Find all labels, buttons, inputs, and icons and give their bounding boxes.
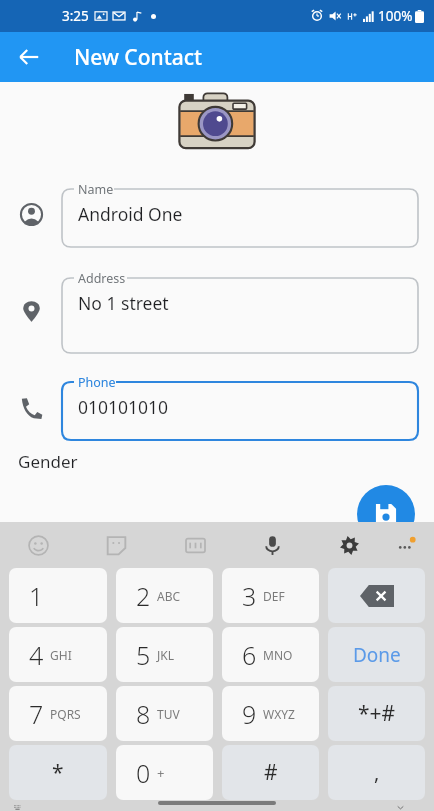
staticText: 010101010 bbox=[78, 395, 169, 419]
button[interactable]: Back bbox=[8, 36, 50, 78]
button[interactable]: # bbox=[222, 745, 319, 800]
staticText: 7 bbox=[29, 697, 44, 731]
button[interactable]: 9 bbox=[222, 686, 319, 741]
button[interactable]: Done bbox=[328, 627, 425, 682]
staticText: , bbox=[374, 759, 380, 786]
button[interactable]: Settings bbox=[329, 525, 369, 565]
button[interactable]: 8 bbox=[116, 686, 213, 741]
button[interactable]: * bbox=[9, 745, 107, 800]
staticText: + bbox=[157, 764, 165, 782]
staticText: Done bbox=[353, 642, 401, 668]
staticText: 1 bbox=[29, 579, 44, 613]
staticText: 5 bbox=[136, 638, 151, 672]
staticText: TUV bbox=[157, 706, 180, 722]
staticText: ABC bbox=[157, 588, 181, 604]
staticText: New Contact bbox=[74, 43, 203, 72]
button[interactable]: Stickers bbox=[96, 525, 136, 565]
button[interactable]: Hide keyboard bbox=[388, 804, 428, 811]
staticText: 6 bbox=[242, 638, 257, 672]
staticText: # bbox=[264, 758, 278, 787]
button[interactable]: Voice input bbox=[252, 525, 292, 565]
staticText: 0 bbox=[136, 756, 151, 790]
button[interactable]: 5 bbox=[116, 627, 213, 682]
staticText: 8 bbox=[136, 697, 151, 731]
button[interactable]: 2 bbox=[116, 568, 213, 623]
staticText: 100% bbox=[378, 7, 413, 25]
button[interactable]: More bbox=[386, 525, 426, 565]
staticText: 3:25 bbox=[62, 7, 89, 25]
staticText: 4 bbox=[29, 638, 44, 672]
button[interactable]: , bbox=[328, 745, 425, 800]
button[interactable]: 6 bbox=[222, 627, 319, 682]
staticText: GHI bbox=[50, 647, 72, 663]
button[interactable]: Backspace bbox=[328, 568, 425, 623]
staticText: PQRS bbox=[50, 706, 81, 722]
button[interactable]: 3 bbox=[222, 568, 319, 623]
button[interactable]: 4 bbox=[9, 627, 107, 682]
button[interactable]: Save contact bbox=[357, 485, 415, 543]
button[interactable]: 1 bbox=[9, 568, 107, 623]
button[interactable]: Emoji bbox=[18, 525, 58, 565]
staticText: DEF bbox=[263, 588, 285, 604]
button[interactable]: Change keyboard bbox=[4, 804, 44, 811]
staticText: WXYZ bbox=[263, 706, 295, 722]
staticText: Gender bbox=[18, 450, 78, 473]
staticText: Phone bbox=[78, 374, 116, 391]
staticText: MNO bbox=[263, 647, 293, 663]
staticText: No 1 street bbox=[78, 291, 169, 315]
staticText: *+# bbox=[358, 699, 396, 728]
staticText: 3 bbox=[242, 579, 257, 613]
staticText: 9 bbox=[242, 697, 257, 731]
staticText: JKL bbox=[157, 647, 174, 663]
button[interactable]: 7 bbox=[9, 686, 107, 741]
button[interactable]: Add photo bbox=[177, 90, 257, 156]
button[interactable]: GIF bbox=[175, 525, 215, 565]
staticText: Address bbox=[78, 270, 126, 287]
staticText: * bbox=[52, 758, 64, 787]
staticText: Android One bbox=[78, 202, 183, 226]
staticText: 2 bbox=[136, 579, 151, 613]
button[interactable]: *+# bbox=[328, 686, 425, 741]
staticText: Name bbox=[78, 181, 114, 198]
button[interactable]: 0 bbox=[116, 745, 213, 800]
